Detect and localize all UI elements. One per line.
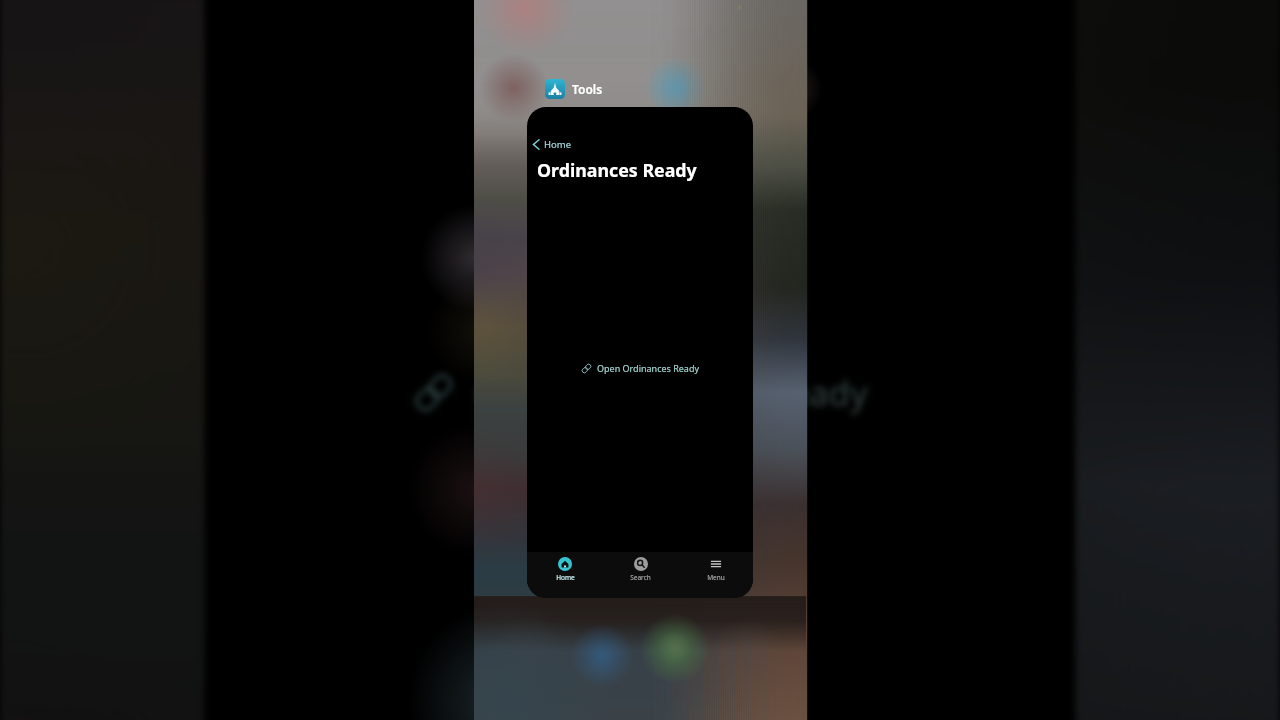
- staticText: Tools: [572, 81, 603, 97]
- other: Home: [558, 557, 572, 571]
- button[interactable]: Home: [527, 136, 580, 153]
- staticText: Menu: [707, 573, 725, 582]
- staticText: Open Ordinances Ready: [474, 368, 871, 414]
- other: Menu: [709, 557, 723, 571]
- staticText: Home: [556, 573, 575, 582]
- other: Search: [634, 557, 648, 571]
- staticText: Ordinances Ready: [537, 158, 697, 182]
- staticText: Search: [630, 573, 651, 582]
- staticText: Open Ordinances Ready: [597, 362, 700, 374]
- button[interactable]: Home: [527, 555, 603, 584]
- button[interactable]: Open Ordinances Ready: [575, 358, 706, 378]
- button[interactable]: Search: [603, 555, 678, 584]
- staticText: Home: [544, 138, 572, 151]
- button[interactable]: Open Ordinances Ready: [389, 352, 894, 429]
- button[interactable]: Menu: [678, 555, 753, 584]
